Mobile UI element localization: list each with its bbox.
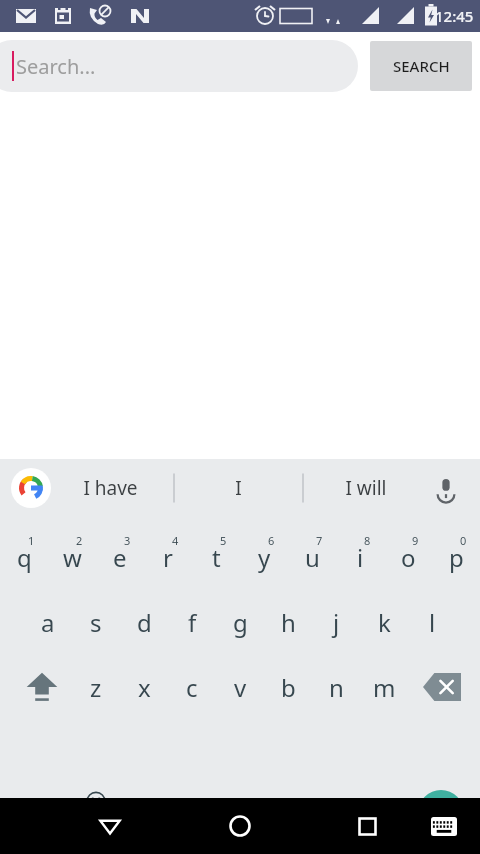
staticText: f: [188, 606, 197, 639]
button[interactable]: I: [182, 459, 294, 517]
staticText: w: [63, 541, 82, 574]
button[interactable]: z: [72, 657, 120, 717]
button[interactable]: i: [336, 527, 384, 587]
staticText: p: [449, 541, 464, 574]
button[interactable]: u: [288, 527, 336, 587]
staticText: u: [305, 541, 320, 574]
button[interactable]: ?123: [8, 784, 64, 842]
staticText: m: [373, 671, 396, 704]
staticText: o: [401, 541, 416, 574]
button[interactable]: y: [240, 527, 288, 587]
staticText: n: [329, 671, 344, 704]
button[interactable]: .: [358, 784, 404, 842]
button[interactable]: d: [120, 592, 168, 652]
staticText: 1: [28, 533, 35, 548]
staticText: 3: [124, 533, 131, 548]
button[interactable]: o: [384, 527, 432, 587]
button[interactable]: Space: [181, 799, 346, 828]
button[interactable]: q: [0, 527, 48, 587]
staticText: l: [429, 606, 436, 639]
staticText: I have: [83, 475, 138, 501]
button[interactable]: Shift: [14, 657, 70, 717]
staticText: SEARCH: [393, 56, 450, 76]
button[interactable]: s: [72, 592, 120, 652]
staticText: 4: [172, 533, 179, 548]
button[interactable]: m: [360, 657, 408, 717]
button[interactable]: b: [264, 657, 312, 717]
button[interactable]: x: [120, 657, 168, 717]
staticText: v: [234, 671, 247, 704]
staticText: 2: [76, 533, 83, 548]
staticText: 0: [460, 533, 467, 548]
button[interactable]: w: [48, 527, 96, 587]
button[interactable]: Home: [212, 798, 268, 854]
staticText: 6: [268, 533, 275, 548]
staticText: ,: [93, 810, 99, 836]
staticText: z: [90, 671, 102, 704]
button[interactable]: SEARCH: [370, 41, 472, 91]
button[interactable]: Recents: [339, 798, 395, 854]
staticText: b: [281, 671, 296, 704]
button[interactable]: I have: [54, 459, 166, 517]
staticText: I will: [345, 475, 387, 501]
button[interactable]: p: [432, 527, 480, 587]
staticText: h: [281, 606, 296, 639]
staticText: k: [378, 606, 391, 639]
staticText: x: [138, 671, 151, 704]
staticText: g: [233, 606, 248, 639]
staticText: j: [333, 606, 340, 639]
button[interactable]: r: [144, 527, 192, 587]
staticText: I: [235, 475, 242, 501]
button[interactable]: l: [408, 592, 456, 652]
staticText: a: [41, 606, 55, 639]
button[interactable]: e: [96, 527, 144, 587]
staticText: d: [137, 606, 152, 639]
button[interactable]: k: [360, 592, 408, 652]
staticText: e: [113, 541, 127, 574]
staticText: c: [186, 671, 198, 704]
staticText: 9: [412, 533, 419, 548]
button[interactable]: Voice input: [426, 468, 466, 508]
staticText: 5: [220, 533, 227, 548]
button[interactable]: v: [216, 657, 264, 717]
button[interactable]: g: [216, 592, 264, 652]
button[interactable]: Emoji: [72, 784, 120, 842]
button[interactable]: f: [168, 592, 216, 652]
button[interactable]: Back: [82, 798, 138, 854]
button[interactable]: Switch keyboard: [422, 804, 466, 848]
button[interactable]: I will: [310, 459, 422, 517]
staticText: 7: [316, 533, 323, 548]
button[interactable]: Google: [11, 468, 51, 508]
staticText: 12:45: [435, 6, 474, 26]
button[interactable]: h: [264, 592, 312, 652]
staticText: t: [212, 541, 221, 574]
button[interactable]: Change language: [119, 784, 167, 842]
staticText: y: [258, 541, 271, 574]
button[interactable]: a: [24, 592, 72, 652]
button[interactable]: Search...: [0, 40, 358, 92]
button[interactable]: Backspace: [414, 657, 470, 717]
button[interactable]: t: [192, 527, 240, 587]
staticText: r: [163, 541, 173, 574]
staticText: s: [90, 606, 102, 639]
staticText: i: [357, 541, 364, 574]
button[interactable]: c: [168, 657, 216, 717]
staticText: 8: [364, 533, 371, 548]
staticText: q: [17, 541, 32, 574]
button[interactable]: n: [312, 657, 360, 717]
button[interactable]: j: [312, 592, 360, 652]
staticText: Search...: [16, 53, 96, 80]
button[interactable]: Enter: [418, 790, 464, 836]
